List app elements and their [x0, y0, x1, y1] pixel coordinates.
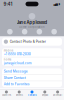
staticText: Recents: [16, 94, 23, 96]
staticText: home: [4, 58, 12, 61]
button[interactable]: Mail: [47, 29, 62, 34]
staticText: Voicemail: [53, 94, 63, 96]
button[interactable]: Contact Photo & Poster: [2, 38, 62, 46]
button[interactable]: Recents: [13, 89, 26, 98]
button[interactable]: Contacts: [26, 89, 38, 98]
staticText: 9:41: [3, 1, 12, 7]
staticText: Contact Photo & Poster: [10, 40, 46, 44]
button[interactable]: Call: [17, 29, 32, 34]
staticText: Add to Favorites: [4, 82, 30, 86]
button[interactable]: home: [2, 57, 62, 66]
button[interactable]: Share Contact: [2, 75, 62, 81]
staticText: Favorites: [2, 94, 11, 96]
button[interactable]: Keypad: [38, 89, 51, 98]
staticText: Acme Corporation: [19, 25, 45, 29]
staticText: jane@icloud.com: [4, 61, 32, 65]
button[interactable]: Voicemail: [51, 89, 64, 98]
button[interactable]: Message: [2, 29, 17, 34]
staticText: Send Message: [4, 69, 28, 73]
button[interactable]: Video: [32, 29, 47, 34]
button[interactable]: Favorites: [0, 89, 13, 98]
staticText: +1 (555) 010-2030: [4, 52, 31, 56]
staticText: ▃▅ ◗: [53, 2, 60, 6]
staticText: Share Contact: [4, 76, 26, 80]
button[interactable]: Add to Favorites: [2, 81, 62, 87]
staticText: mobile: [4, 49, 14, 52]
button[interactable]: mobile: [2, 48, 62, 57]
button[interactable]: Send Message: [2, 68, 62, 74]
staticText: Keypad: [42, 94, 48, 96]
staticText: Jane Appleseed: [16, 20, 47, 25]
staticText: Contacts: [27, 94, 36, 96]
